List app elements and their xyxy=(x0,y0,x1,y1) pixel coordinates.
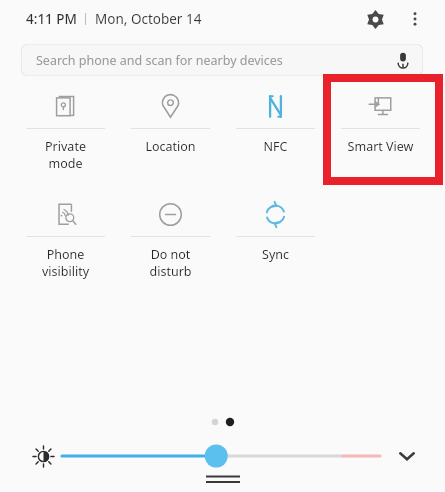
staticText: Search phone and scan for nearby devices xyxy=(36,52,283,69)
staticText: Smart View xyxy=(341,138,420,155)
button[interactable]: NFC xyxy=(236,84,315,155)
staticText: NFC xyxy=(236,138,315,155)
button[interactable]: Do not disturb xyxy=(131,192,210,280)
staticText: Location xyxy=(131,138,210,155)
button[interactable]: Private mode xyxy=(26,84,105,172)
staticText: Do not disturb xyxy=(131,246,210,280)
button[interactable]: Voice search xyxy=(391,48,415,72)
button[interactable]: Brightness xyxy=(28,441,58,471)
button[interactable]: More options xyxy=(397,1,433,37)
staticText: Phone visibility xyxy=(26,246,105,280)
button[interactable]: Expand brightness settings xyxy=(392,441,422,471)
staticText: Mon, October 14 xyxy=(95,10,202,28)
button[interactable]: Location xyxy=(131,84,210,155)
button[interactable]: Search phone and scan for nearby devices xyxy=(21,44,423,76)
staticText: 4:11 PM xyxy=(26,10,77,28)
button[interactable]: Smart View xyxy=(341,84,420,155)
staticText: Sync xyxy=(236,246,315,263)
button[interactable]: Sync xyxy=(236,192,315,263)
button[interactable]: Brightness slider xyxy=(62,442,380,470)
button[interactable]: Phone visibility xyxy=(26,192,105,280)
staticText: Private mode xyxy=(26,138,105,172)
button[interactable]: Settings xyxy=(357,1,393,37)
